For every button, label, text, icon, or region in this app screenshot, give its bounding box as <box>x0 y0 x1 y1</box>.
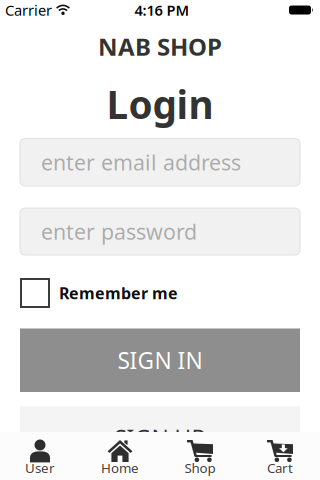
button[interactable]: enter password <box>20 208 300 255</box>
staticText: 4:16 PM <box>134 0 189 20</box>
staticText: Cart <box>267 459 293 477</box>
staticText: Remember me <box>59 282 178 304</box>
staticText: Shop <box>184 459 215 477</box>
staticText: enter email address <box>41 148 241 176</box>
staticText: NAB SHOP <box>98 31 222 62</box>
staticText: Carrier <box>5 0 52 20</box>
button[interactable]: SIGN IN <box>20 328 300 392</box>
staticText: User <box>25 459 55 477</box>
button[interactable]: Home <box>80 432 160 480</box>
staticText: SIGN UP <box>114 423 205 453</box>
staticText: SIGN IN <box>117 345 202 375</box>
staticText: enter password <box>41 217 197 246</box>
button[interactable]: enter email address <box>20 138 300 186</box>
button[interactable]: Remember me checkbox <box>20 278 50 308</box>
staticText: Home <box>101 459 139 477</box>
button[interactable]: User <box>0 432 80 480</box>
button[interactable]: SIGN UP <box>20 406 300 469</box>
button[interactable]: Shop <box>160 432 240 480</box>
button[interactable]: Cart <box>240 432 320 480</box>
staticText: Login <box>106 78 213 130</box>
